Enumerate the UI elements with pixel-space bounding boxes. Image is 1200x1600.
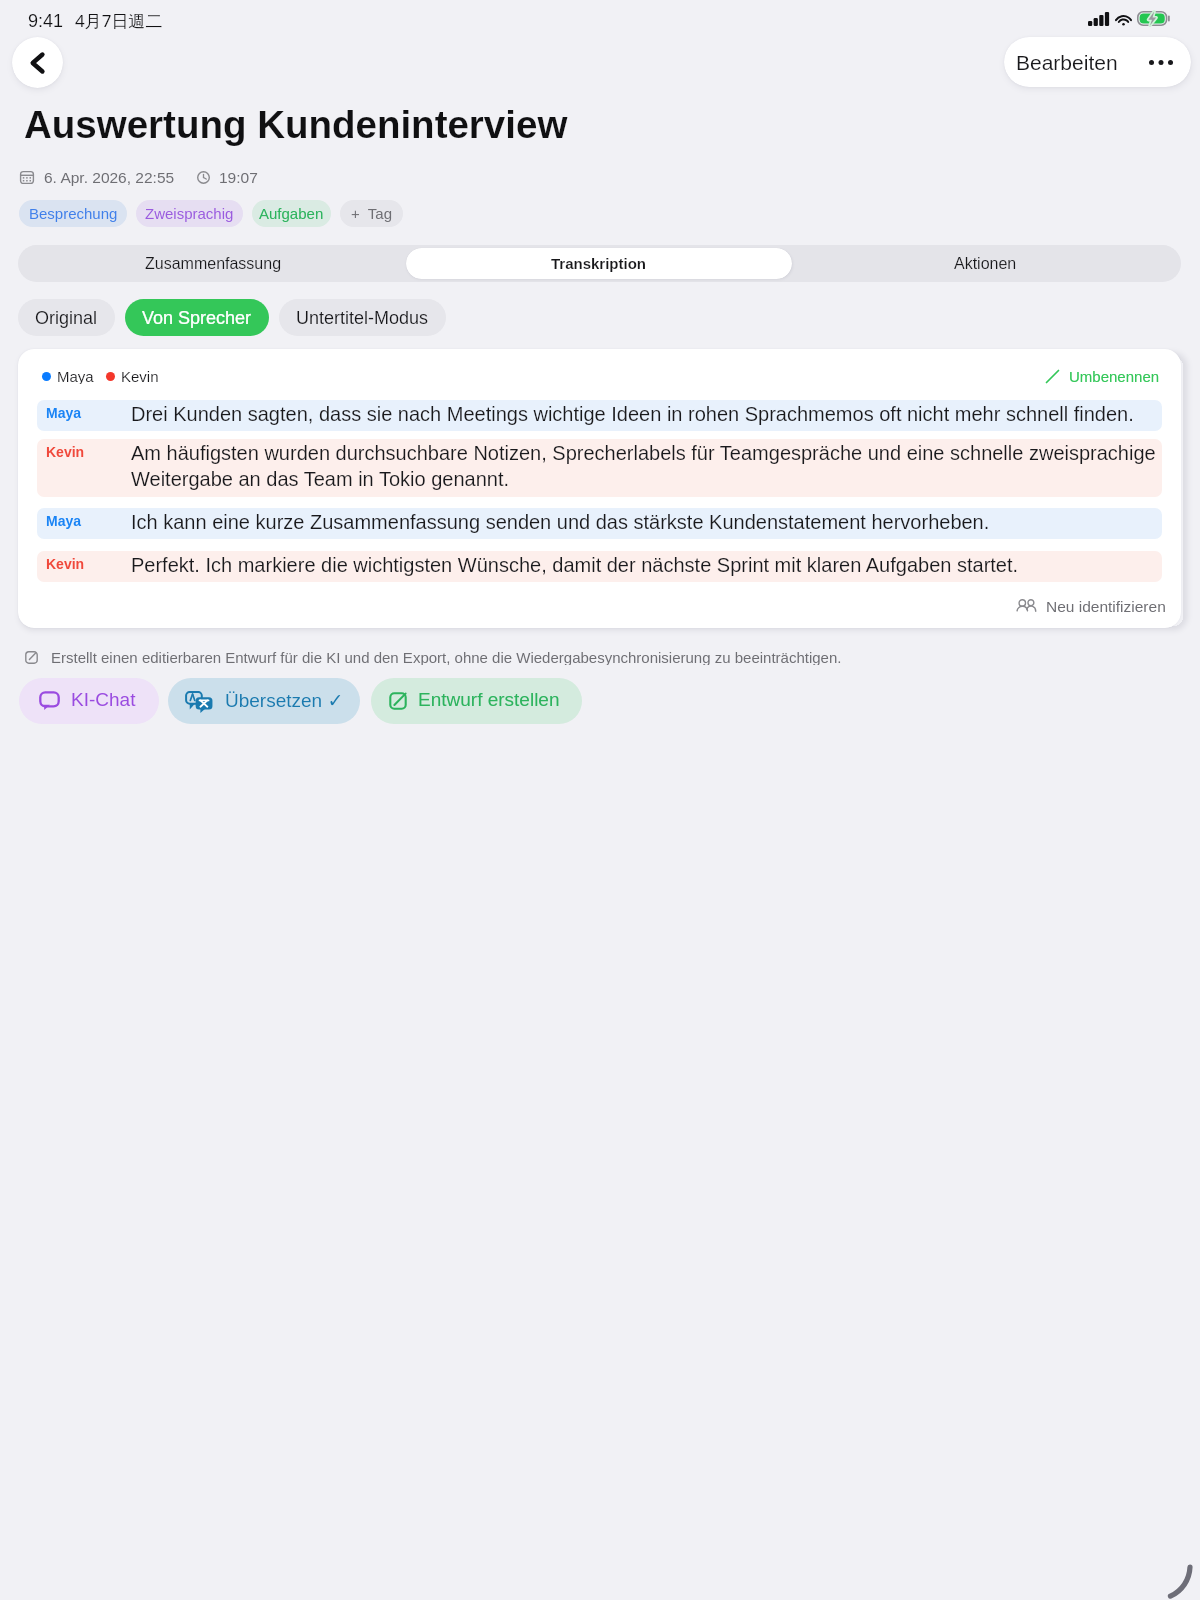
staticText: Maya <box>46 513 82 529</box>
staticText: 4月7日週二 <box>75 9 163 32</box>
staticText: + Tag <box>351 205 393 222</box>
staticText: Kevin <box>46 444 85 460</box>
button[interactable]: Kevin <box>37 551 1162 582</box>
staticText: Umbenennen <box>1069 368 1160 384</box>
staticText: KI-Chat <box>71 689 136 710</box>
staticText: Maya <box>57 368 94 384</box>
button[interactable]: Bearbeiten <box>1004 37 1191 87</box>
button[interactable]: Übersetzen ✓ <box>168 678 360 724</box>
staticText: Ich kann eine kurze Zusammenfassung send… <box>131 511 1162 533</box>
button[interactable]: Maya <box>37 508 1162 539</box>
staticText: Aufgaben <box>259 205 324 222</box>
button[interactable]: Von Sprecher <box>125 299 269 336</box>
staticText: Original <box>35 308 98 328</box>
staticText: Von Sprecher <box>142 308 252 328</box>
button[interactable]: Entwurf erstellen <box>371 678 582 724</box>
staticText: Transkription <box>551 255 647 272</box>
button[interactable]: Besprechung <box>19 200 127 227</box>
staticText: Zusammenfassung <box>145 255 282 273</box>
staticText: Entwurf erstellen <box>418 689 560 710</box>
staticText: 6. Apr. 2026, 22:55 <box>44 169 175 186</box>
staticText: 9:41 <box>28 11 64 31</box>
button[interactable]: Aufgaben <box>252 200 331 227</box>
button[interactable]: Zweisprachig <box>136 200 243 227</box>
staticText: Erstellt einen editierbaren Entwurf für … <box>51 649 842 665</box>
staticText: Drei Kunden sagten, dass sie nach Meetin… <box>131 403 1162 425</box>
staticText: Bearbeiten <box>1016 51 1118 74</box>
staticText: Übersetzen ✓ <box>225 689 344 711</box>
button[interactable]: Transkription <box>406 248 792 279</box>
button[interactable]: KI-Chat <box>19 678 159 724</box>
button[interactable]: Neu identifizieren <box>1016 598 1166 614</box>
staticText: Maya <box>46 405 82 421</box>
staticText: Untertitel-Modus <box>296 308 429 328</box>
staticText: Neu identifizieren <box>1046 598 1166 614</box>
button[interactable]: Original <box>18 299 115 336</box>
button[interactable]: Zurück <box>12 37 63 88</box>
button[interactable]: Umbenennen <box>1046 368 1160 384</box>
staticText: Besprechung <box>29 205 118 222</box>
button[interactable]: Zusammenfassung <box>21 248 406 279</box>
staticText: Aktionen <box>954 255 1017 273</box>
button[interactable]: Kevin <box>37 439 1162 497</box>
staticText: Am häufigsten wurden durchsuchbare Notiz… <box>131 442 1162 490</box>
staticText: Kevin <box>46 556 85 572</box>
staticText: Perfekt. Ich markiere die wichtigsten Wü… <box>131 554 1162 576</box>
staticText: Kevin <box>121 368 159 384</box>
button[interactable]: Aktionen <box>792 248 1178 279</box>
button[interactable]: Maya <box>37 400 1162 431</box>
button[interactable]: Untertitel-Modus <box>279 299 446 336</box>
staticText: 19:07 <box>219 169 258 186</box>
staticText: Auswertung Kundeninterview <box>24 103 568 146</box>
button[interactable]: + Tag <box>340 200 403 227</box>
staticText: Zweisprachig <box>145 205 234 222</box>
